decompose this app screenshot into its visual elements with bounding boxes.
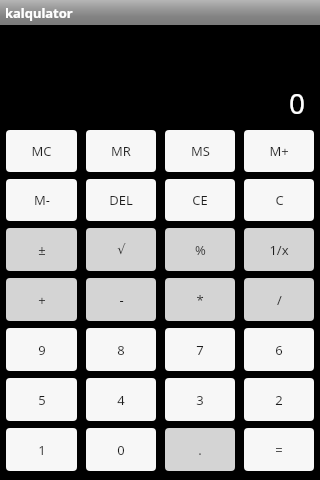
staticText: 4	[117, 391, 125, 409]
staticText: MS	[191, 142, 210, 160]
button[interactable]: 1/x	[244, 228, 314, 271]
staticText: √	[117, 242, 126, 257]
staticText: *	[196, 291, 204, 309]
button[interactable]: -	[86, 278, 156, 321]
staticText: -	[119, 291, 124, 309]
staticText: 7	[196, 341, 204, 359]
button[interactable]: ±	[6, 228, 77, 271]
button[interactable]: 2	[244, 378, 314, 421]
button[interactable]: M-	[6, 179, 77, 221]
button[interactable]: MS	[165, 130, 235, 172]
button[interactable]: =	[244, 428, 314, 471]
button[interactable]: MR	[86, 130, 156, 172]
button[interactable]: CE	[165, 179, 235, 221]
staticText: ±	[38, 241, 46, 259]
button[interactable]: MC	[6, 130, 77, 172]
button[interactable]: √	[86, 228, 156, 271]
button[interactable]: 6	[244, 328, 314, 371]
button[interactable]: %	[165, 228, 235, 271]
staticText: 0	[117, 441, 125, 459]
button[interactable]: C	[244, 179, 314, 221]
staticText: MR	[111, 142, 131, 160]
staticText: 1	[38, 441, 46, 459]
staticText: 3	[196, 391, 204, 409]
button[interactable]: 1	[6, 428, 77, 471]
staticText: /	[277, 291, 282, 309]
staticText: MC	[31, 142, 52, 160]
button[interactable]: *	[165, 278, 235, 321]
staticText: DEL	[109, 191, 133, 209]
button[interactable]: /	[244, 278, 314, 321]
staticText: M-	[34, 191, 50, 209]
staticText: 6	[275, 341, 283, 359]
staticText: .	[198, 441, 202, 459]
staticText: C	[275, 191, 284, 209]
button[interactable]: 7	[165, 328, 235, 371]
button[interactable]: .	[165, 428, 235, 471]
button[interactable]: DEL	[86, 179, 156, 221]
button[interactable]: +	[6, 278, 77, 321]
staticText: CE	[192, 191, 208, 209]
staticText: kalqulator	[5, 4, 73, 22]
staticText: 1/x	[269, 241, 289, 259]
staticText: 9	[38, 341, 46, 359]
staticText: M+	[269, 142, 289, 160]
staticText: 5	[38, 391, 46, 409]
staticText: 8	[117, 341, 125, 359]
staticText: %	[195, 241, 206, 259]
staticText: 0	[288, 84, 305, 122]
button[interactable]: 5	[6, 378, 77, 421]
button[interactable]: 9	[6, 328, 77, 371]
staticText: +	[38, 291, 46, 309]
button[interactable]: M+	[244, 130, 314, 172]
button[interactable]: 3	[165, 378, 235, 421]
button[interactable]: 4	[86, 378, 156, 421]
staticText: =	[275, 441, 283, 459]
button[interactable]: 8	[86, 328, 156, 371]
button[interactable]: 0	[86, 428, 156, 471]
staticText: 2	[275, 391, 283, 409]
